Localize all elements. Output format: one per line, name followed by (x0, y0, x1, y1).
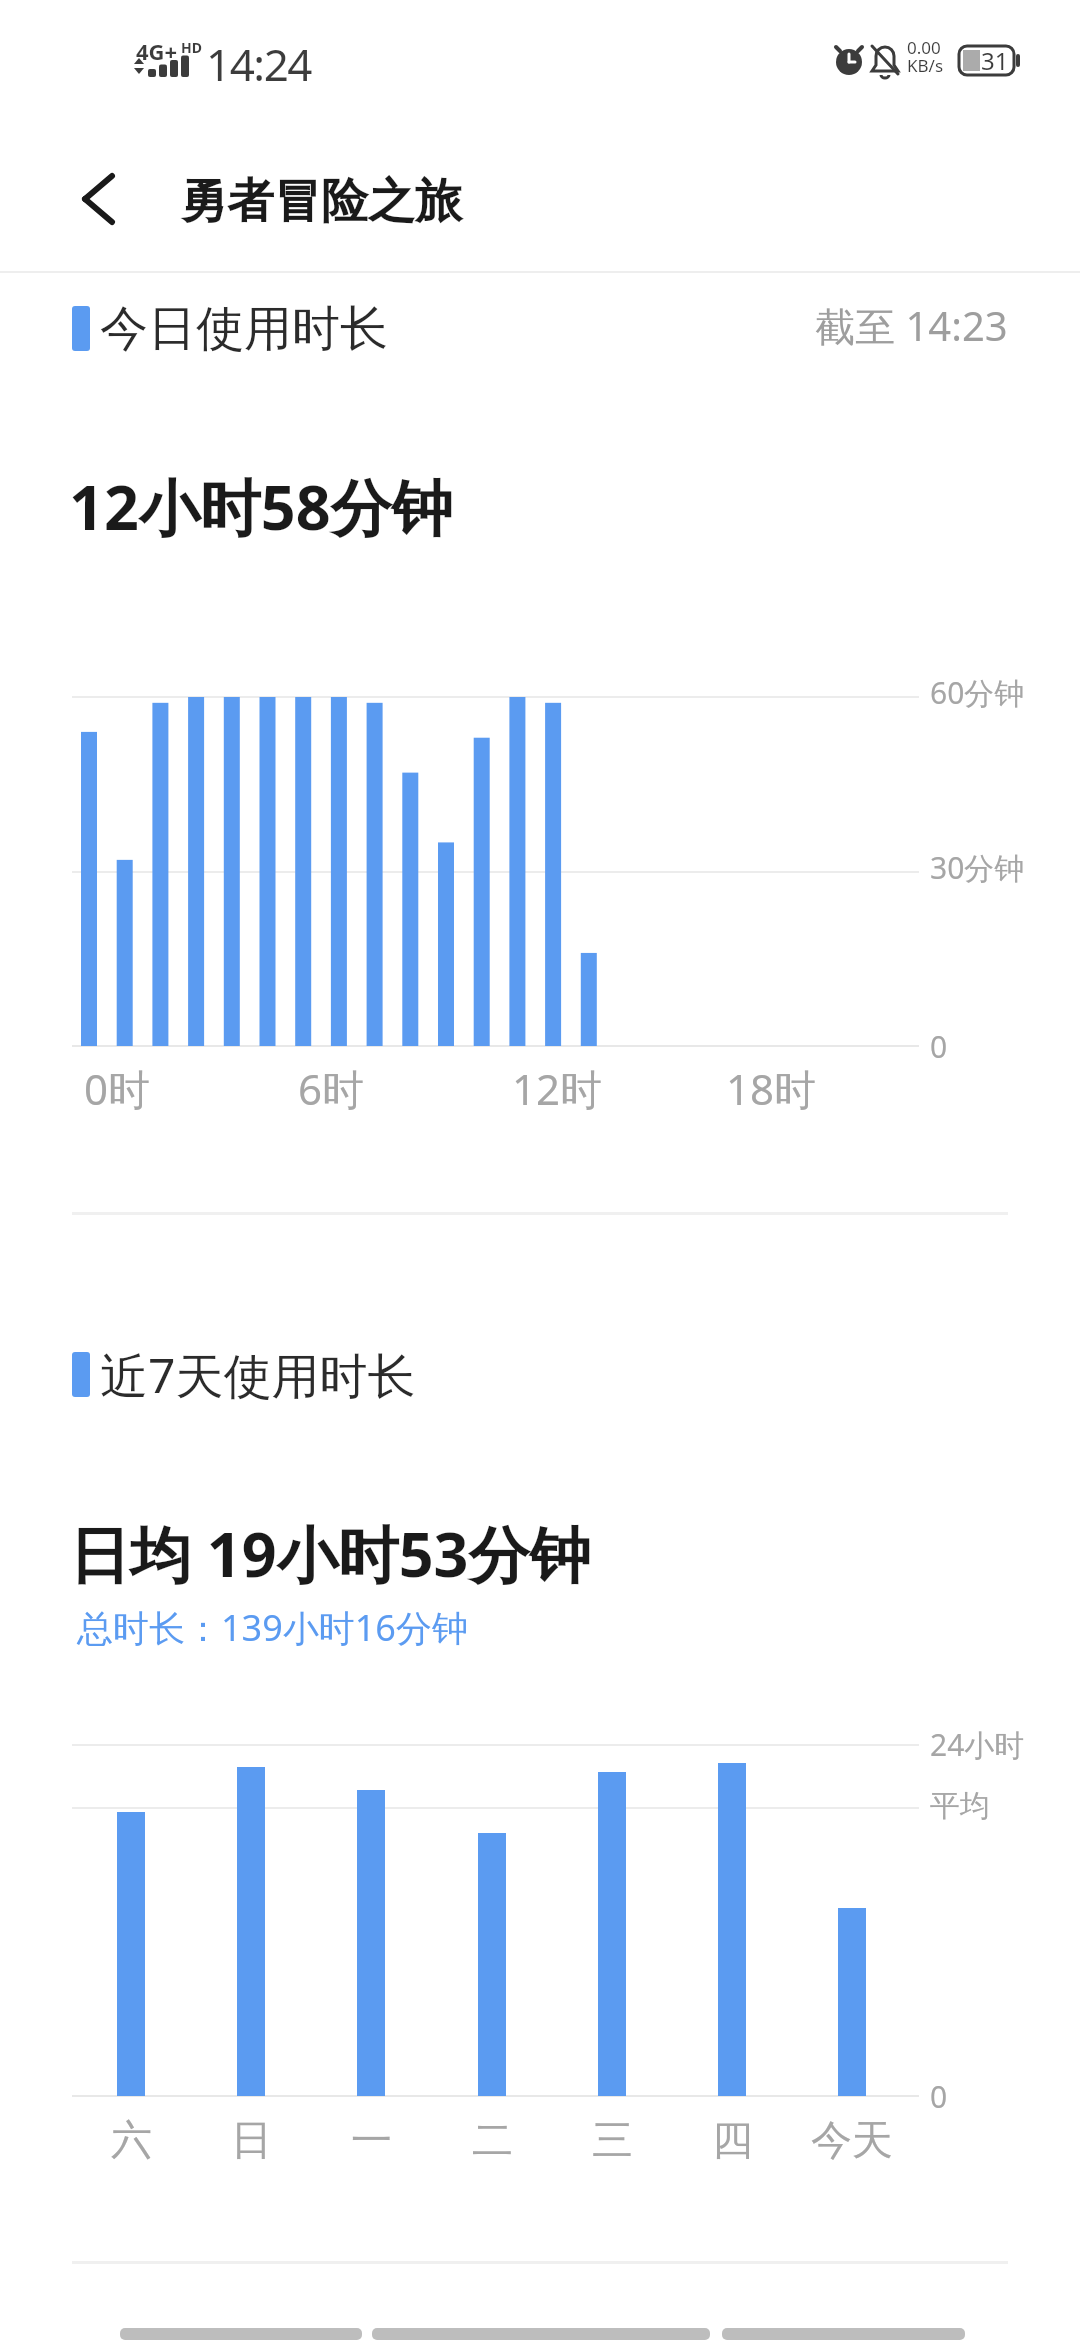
button[interactable] (722, 2326, 965, 2340)
staticText: 0.00 (907, 36, 941, 59)
staticText: HD (181, 38, 202, 57)
staticText: 4G+ (136, 36, 178, 66)
staticText: 14:24 (206, 34, 311, 94)
staticText: 日均 19小时53分钟 (69, 1512, 591, 1595)
staticText: 近7天使用时长 (100, 1342, 416, 1408)
staticText: 今天 (811, 2115, 893, 2167)
staticText: 六 (111, 2115, 152, 2167)
staticText: 12时 (512, 1060, 603, 1117)
staticText: 四 (712, 2115, 753, 2167)
staticText: 6时 (298, 1060, 365, 1117)
staticText: 日 (231, 2115, 272, 2167)
staticText: 0时 (84, 1060, 151, 1117)
staticText: 31 (981, 44, 1009, 77)
button[interactable] (120, 2326, 362, 2340)
button[interactable] (60, 160, 140, 240)
staticText: 0 (930, 2076, 948, 2117)
staticText: 一 (351, 2115, 392, 2167)
staticText: 今日使用时长 (100, 299, 388, 359)
staticText: 24小时 (930, 1724, 1025, 1765)
staticText: 截至 14:23 (815, 298, 1008, 353)
staticText: 0 (930, 1026, 948, 1067)
staticText: 60分钟 (930, 672, 1025, 713)
staticText: 平均 (930, 1787, 990, 1825)
staticText: 30分钟 (930, 847, 1025, 888)
staticText: 总时长：139小时16分钟 (77, 1603, 468, 1652)
staticText: 18时 (726, 1060, 817, 1117)
staticText: 勇者冒险之旅 (180, 172, 462, 231)
button[interactable] (372, 2326, 710, 2340)
staticText: KB/s (907, 54, 944, 77)
staticText: 二 (472, 2115, 513, 2167)
staticText: 三 (592, 2115, 633, 2167)
staticText: 12小时58分钟 (69, 465, 453, 548)
